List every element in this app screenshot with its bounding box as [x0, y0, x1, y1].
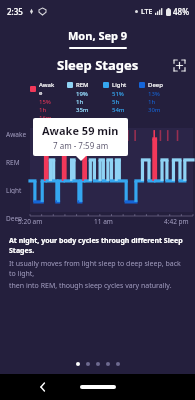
staticText: 51%	[112, 90, 124, 98]
staticText: At night, your body cycles through diffe…	[9, 236, 186, 256]
staticText: 2:35	[7, 6, 23, 17]
button[interactable]: Page 1	[76, 362, 80, 366]
staticText: 1h 30m	[148, 98, 165, 114]
staticText: 7 am - 7:59 am	[53, 140, 109, 151]
button[interactable]: Back	[34, 378, 52, 396]
staticText: 48%	[173, 6, 189, 17]
staticText: Deep	[148, 81, 163, 89]
staticText: 4:42 pm	[164, 217, 189, 226]
staticText: then into REM, though sleep cycles vary …	[9, 281, 172, 291]
button[interactable]: Expand chart	[170, 56, 188, 74]
staticText: 1h 16m	[39, 106, 57, 122]
staticText: REM	[76, 81, 89, 89]
staticText: Light	[6, 186, 22, 194]
staticText: 5:20 am	[18, 217, 43, 226]
staticText: LTE	[141, 7, 153, 17]
staticText: Light	[112, 81, 127, 89]
staticText: 15%	[39, 98, 51, 106]
button[interactable]: Home	[80, 385, 116, 389]
staticText: REM	[6, 158, 20, 166]
staticText: 5h 54m	[112, 98, 129, 114]
button[interactable]: Page 5	[116, 362, 120, 366]
button[interactable]: Page 3	[96, 362, 100, 366]
staticText: It usually moves from light sleep to dee…	[9, 259, 186, 279]
button[interactable]: Page 4	[106, 362, 110, 366]
staticText: Deep	[6, 214, 23, 222]
staticText: Awake	[39, 81, 57, 97]
staticText: Mon, Sep 9	[68, 28, 128, 43]
staticText: Awake	[6, 130, 27, 138]
staticText: 13%	[148, 90, 160, 98]
button[interactable]: Page 2	[86, 362, 90, 366]
button[interactable]: Awake 59 min	[33, 118, 128, 156]
staticText: 1h 35m	[76, 98, 93, 114]
staticText: Sleep Stages	[57, 56, 139, 74]
staticText: 11 am	[94, 217, 113, 226]
button[interactable]: Mon, Sep 9	[0, 22, 195, 49]
staticText: 19%	[76, 90, 88, 98]
staticText: Awake 59 min	[42, 123, 119, 138]
